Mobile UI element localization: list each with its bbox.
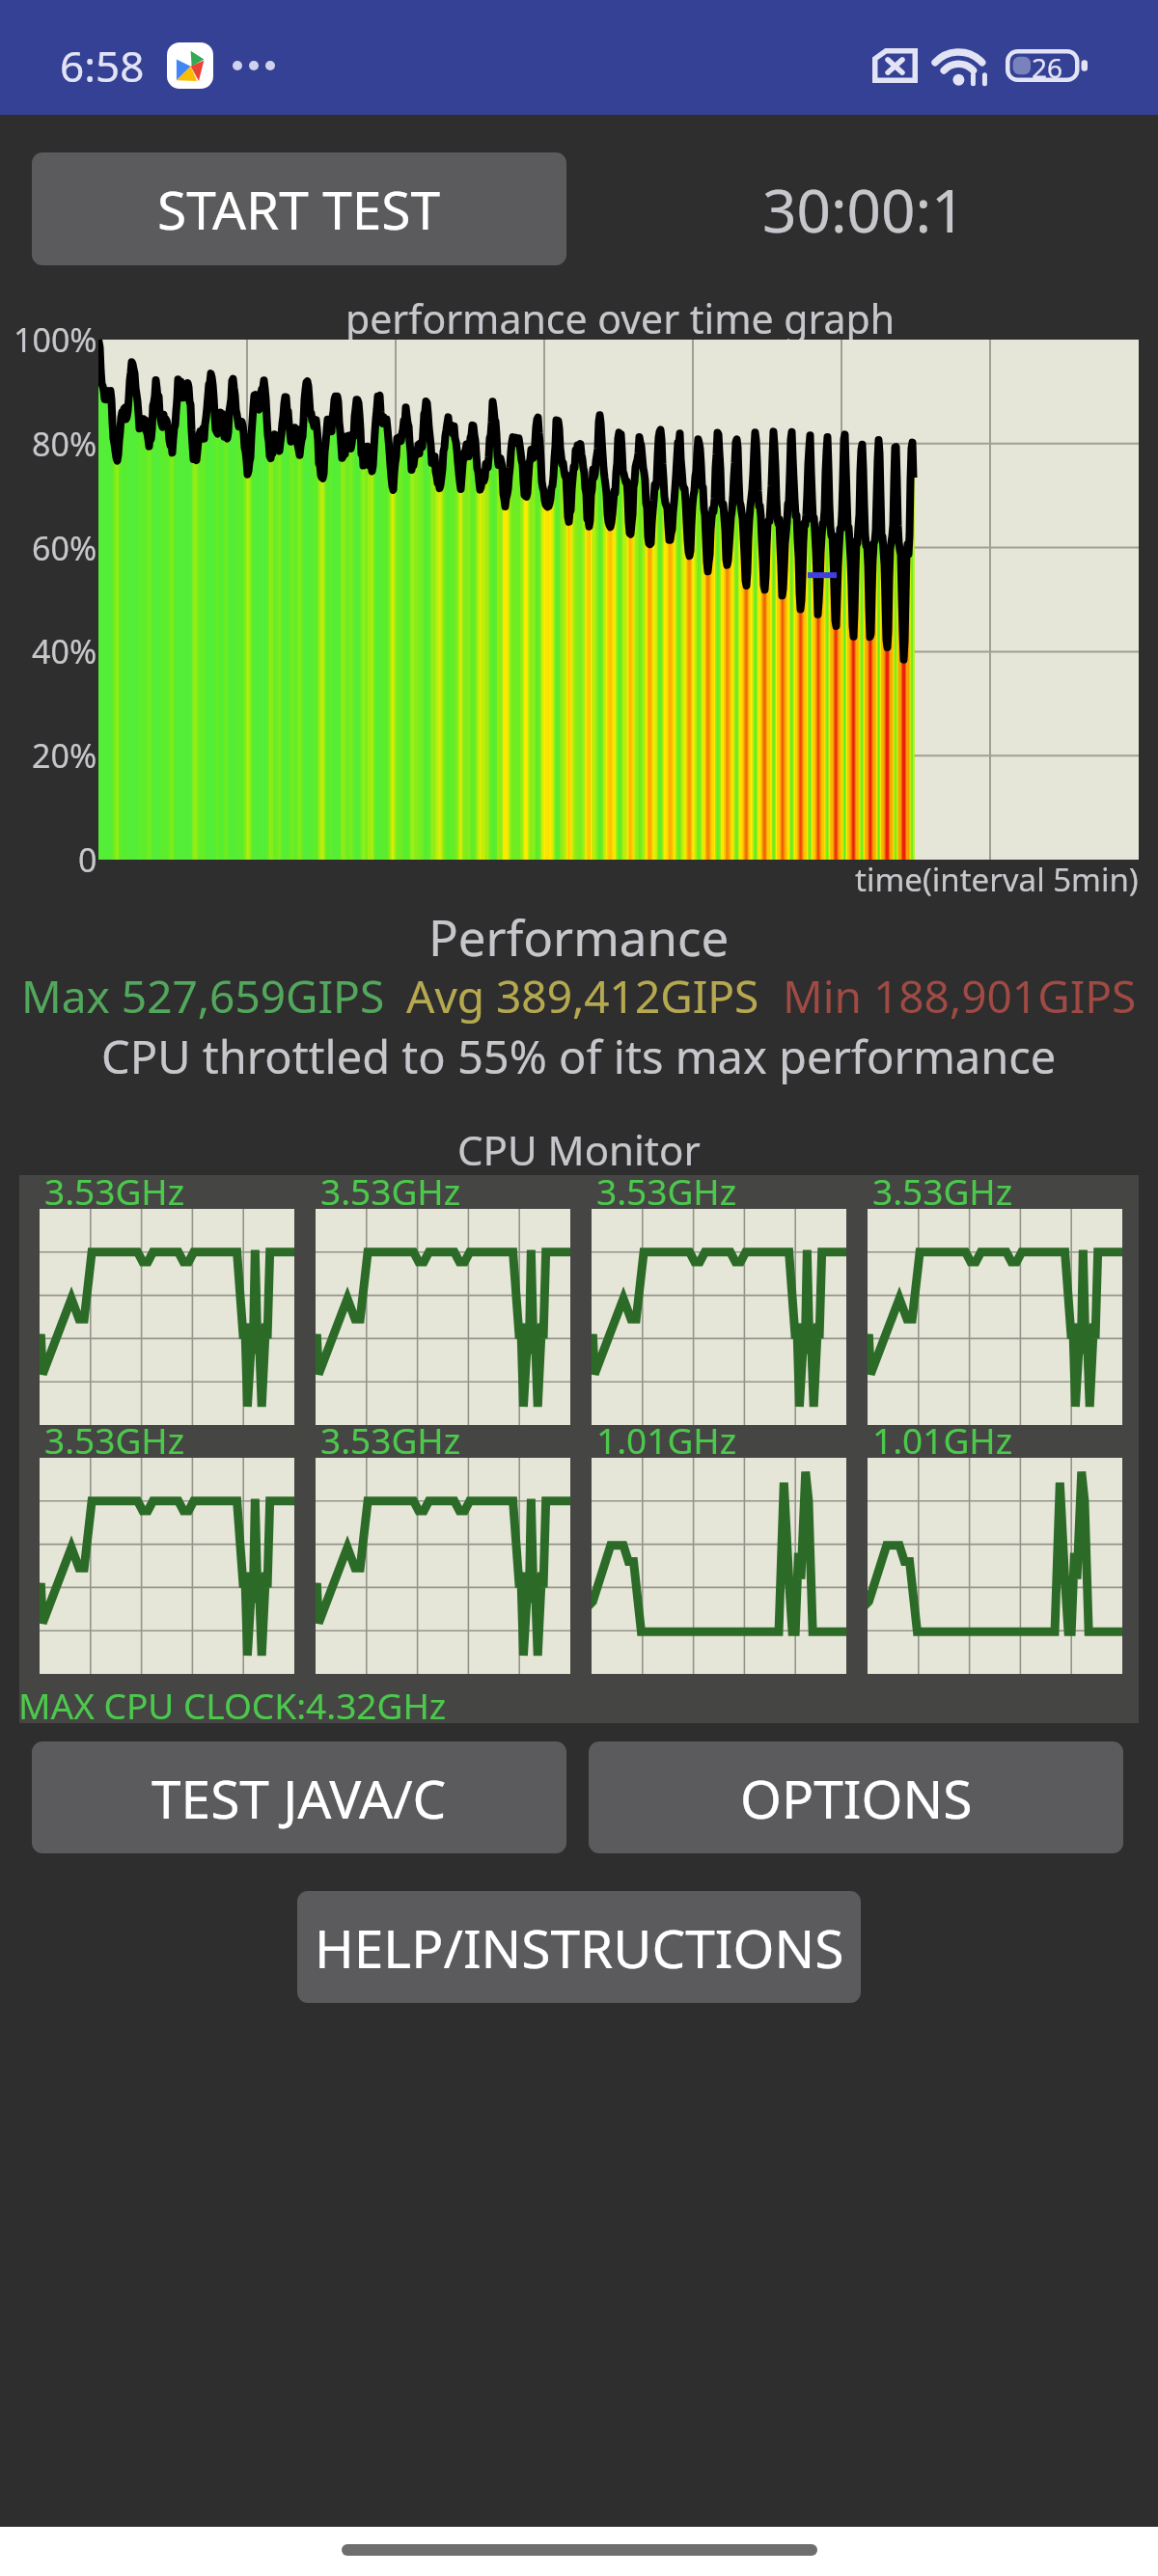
staticText: 6:58 (60, 37, 145, 95)
staticText: performance over time graph (345, 291, 896, 345)
staticText: 26 (1032, 49, 1063, 82)
button[interactable]: TEST JAVA/C (32, 1741, 566, 1853)
staticText: 30:00:1 (762, 169, 966, 250)
staticText: Min 188,901GIPS (783, 966, 1137, 1027)
staticText: TEST JAVA/C (152, 1762, 447, 1834)
button[interactable]: HELP/INSTRUCTIONS (297, 1891, 861, 2003)
staticText: 40% (32, 629, 97, 673)
staticText: time(interval 5min) (855, 858, 1139, 901)
staticText: 1.01GHz (872, 1415, 1013, 1464)
staticText: 3.53GHz (596, 1166, 737, 1215)
staticText: 60% (32, 526, 97, 570)
staticText: 80% (32, 422, 97, 466)
staticText: 20% (32, 733, 97, 778)
staticText: HELP/INSTRUCTIONS (315, 1911, 844, 1984)
staticText: 0 (78, 837, 97, 882)
staticText: MAX CPU CLOCK:4.32GHz (18, 1681, 447, 1729)
staticText: Avg 389,412GIPS (406, 966, 759, 1027)
staticText: START TEST (157, 173, 441, 245)
staticText: 3.53GHz (872, 1166, 1013, 1215)
staticText: 3.53GHz (44, 1166, 185, 1215)
other: No SIM card (872, 48, 918, 83)
staticText: 3.53GHz (320, 1166, 461, 1215)
button[interactable]: START TEST (32, 152, 566, 265)
staticText: Max 527,659GIPS (21, 966, 385, 1027)
staticText: CPU throttled to 55% of its max performa… (101, 1026, 1057, 1087)
staticText: 1.01GHz (596, 1415, 737, 1464)
staticText: 3.53GHz (44, 1415, 185, 1464)
staticText: 3.53GHz (320, 1415, 461, 1464)
staticText: OPTIONS (740, 1762, 973, 1834)
other: Wi-Fi (934, 45, 986, 85)
other: Battery 26 percent (1006, 49, 1088, 82)
staticText: Performance (428, 903, 730, 970)
button[interactable]: OPTIONS (589, 1741, 1123, 1853)
button[interactable]: Home (342, 2544, 817, 2556)
staticText: CPU Monitor (457, 1122, 701, 1177)
staticText: 100% (14, 317, 97, 362)
